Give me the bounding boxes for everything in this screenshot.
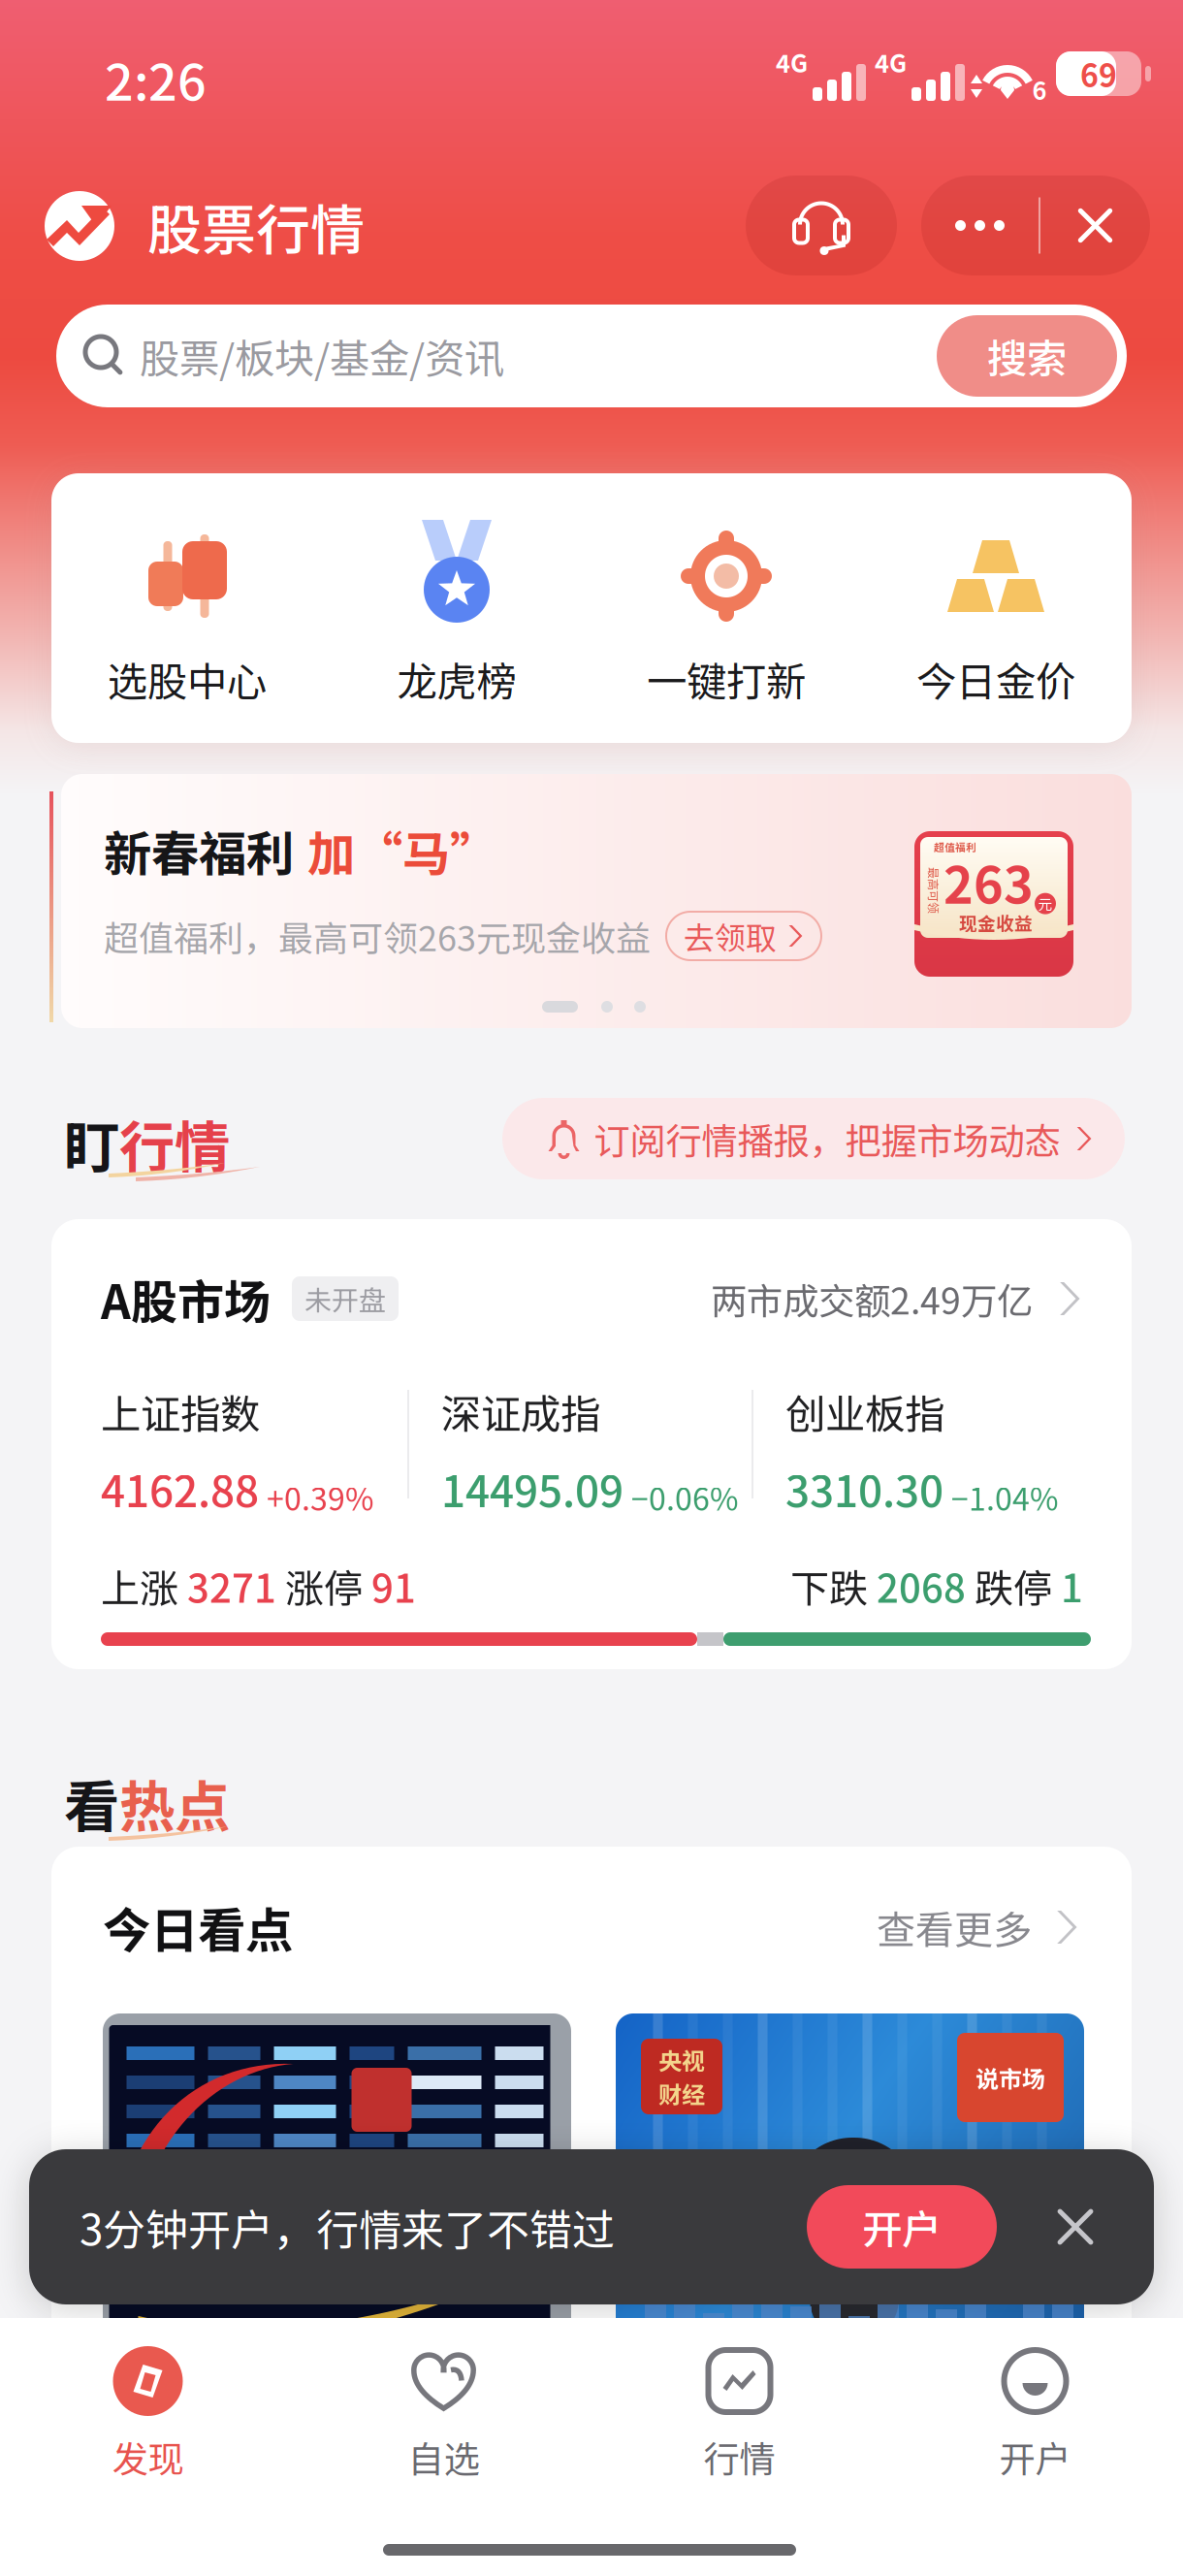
staticText: 热点 (119, 1763, 230, 1843)
button[interactable]: 发现 (0, 2339, 296, 2514)
staticText: 股票/板块/基金/资讯 (140, 327, 504, 385)
staticText: 超值福利 (934, 839, 976, 854)
staticText: +0.39% (267, 1475, 373, 1520)
staticText: 上证指数 (101, 1382, 260, 1440)
staticText: 开户 (999, 2431, 1071, 2483)
button[interactable]: 行情 (591, 2339, 887, 2514)
staticText: −0.06% (631, 1475, 738, 1520)
staticText: 创业板指 (785, 1382, 944, 1440)
staticText: 2:26 (105, 42, 207, 115)
staticText: 深证成指 (441, 1382, 600, 1440)
staticText: 说市场 (975, 2061, 1045, 2094)
button[interactable]: 查看更多 (877, 1899, 1080, 1955)
staticText: 两市成交额2.49万亿 (711, 1272, 1033, 1325)
button[interactable]: 今日金价 (861, 473, 1131, 743)
staticText: 1 (1061, 1558, 1083, 1614)
staticText: 91 (371, 1558, 416, 1614)
staticText: 14495.09 (441, 1458, 623, 1520)
staticText: 上涨 (101, 1558, 187, 1614)
staticText: 开户 (862, 2198, 942, 2256)
staticText: 最高可领 (911, 882, 957, 899)
button[interactable]: 一键打新 (591, 473, 861, 743)
button[interactable]: 龙虎榜 (322, 473, 591, 743)
staticText: 行情 (119, 1103, 230, 1184)
button[interactable]: 股票/板块/基金/资讯 (56, 305, 1127, 407)
staticText: 69 (1080, 51, 1117, 96)
staticText: 龙虎榜 (397, 650, 516, 708)
staticText: A股市场 (101, 1265, 271, 1332)
button[interactable]: 央视 财经 (616, 2013, 1084, 2343)
staticText: 股票行情 (147, 187, 365, 265)
staticText: 4162.88 (101, 1458, 259, 1520)
staticText: 未开盘 (304, 1279, 386, 1318)
staticText: 去领取 (684, 913, 777, 958)
button[interactable]: 新春福利 (61, 774, 1132, 1028)
staticText: 3310.30 (785, 1458, 943, 1520)
staticText: 订阅行情播报，把握市场动态 (594, 1112, 1060, 1165)
staticText: 6 (1032, 71, 1047, 107)
button[interactable]: 关闭 (1041, 2193, 1109, 2261)
staticText: 看 (64, 1763, 119, 1843)
staticText: 加“马” (307, 816, 497, 885)
staticText: 跌停 (966, 1558, 1061, 1614)
staticText: 行情 (703, 2431, 775, 2483)
button[interactable] (103, 2013, 571, 2343)
button[interactable]: 更多 (921, 176, 1150, 275)
staticText: 4G (875, 44, 907, 80)
staticText: 超值福利，最高可领263元现金收益 (104, 911, 651, 961)
button[interactable]: 开户 (807, 2185, 997, 2269)
staticText: 搜索 (987, 327, 1067, 385)
staticText: 263 (943, 845, 1034, 918)
staticText: 涨停 (276, 1558, 371, 1614)
staticText: 今日看点 (103, 1893, 293, 1962)
staticText: 下跌 (790, 1558, 877, 1614)
staticText: 新春福利 (104, 816, 294, 885)
staticText: 自选 (408, 2431, 480, 2483)
staticText: 现金收益 (959, 909, 1033, 935)
staticText: 元 (1038, 893, 1053, 914)
staticText: 今日金价 (916, 650, 1075, 708)
staticText: 盯 (64, 1103, 119, 1184)
staticText: 4G (776, 44, 808, 80)
staticText: 查看更多 (877, 1899, 1032, 1955)
button[interactable]: 选股中心 (52, 473, 322, 743)
staticText: 3分钟开户，行情来了不错过 (80, 2196, 615, 2258)
staticText: 发现 (112, 2431, 184, 2483)
button[interactable]: 客服 (746, 176, 897, 275)
staticText: 3271 (187, 1558, 276, 1614)
staticText: −1.04% (951, 1475, 1058, 1520)
staticText: 2068 (877, 1558, 966, 1614)
button[interactable]: 自选 (296, 2339, 591, 2514)
button[interactable]: A股市场 (51, 1219, 1132, 1669)
staticText: 选股中心 (108, 650, 267, 708)
button[interactable]: 开户 (887, 2339, 1183, 2514)
staticText: 央视 财经 (658, 2043, 705, 2110)
staticText: 一键打新 (647, 650, 806, 708)
button[interactable]: 订阅行情播报，把握市场动态 (502, 1098, 1125, 1179)
